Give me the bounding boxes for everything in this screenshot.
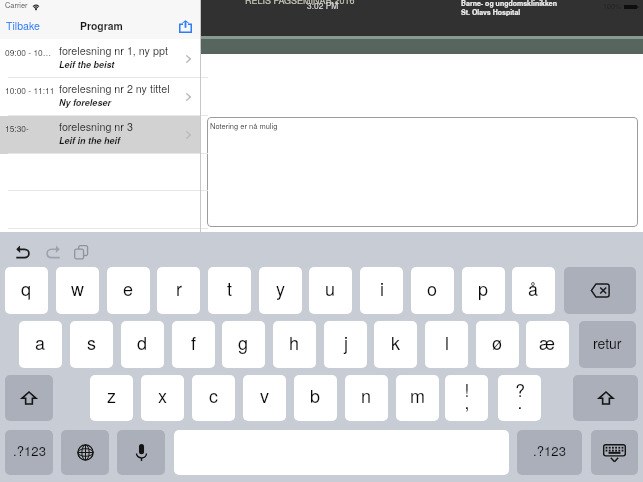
button[interactable]: k bbox=[374, 321, 417, 368]
button[interactable]: q bbox=[5, 267, 48, 314]
staticText: g bbox=[238, 329, 249, 355]
staticText: e bbox=[123, 275, 134, 301]
staticText: f bbox=[191, 329, 197, 355]
staticText: b bbox=[310, 382, 321, 408]
button[interactable]: Paste bbox=[70, 241, 91, 262]
button[interactable]: Next keyboard bbox=[61, 430, 109, 475]
staticText: z bbox=[107, 382, 116, 408]
staticText: r bbox=[176, 275, 182, 301]
button[interactable]: y bbox=[259, 267, 302, 314]
staticText: æ bbox=[539, 329, 556, 355]
staticText: forelesning nr 3 bbox=[59, 119, 133, 134]
button[interactable]: 15:30- bbox=[0, 116, 200, 154]
button[interactable]: å bbox=[512, 267, 555, 314]
staticText: h bbox=[289, 329, 300, 355]
staticText: Tilbake bbox=[6, 18, 40, 33]
staticText: v bbox=[260, 382, 269, 408]
staticText: x bbox=[158, 382, 167, 408]
button[interactable]: t bbox=[208, 267, 251, 314]
staticText: o bbox=[427, 275, 438, 301]
button[interactable]: retur bbox=[579, 321, 636, 368]
staticText: c bbox=[209, 382, 218, 408]
button[interactable]: a bbox=[19, 321, 62, 368]
staticText: m bbox=[410, 382, 425, 408]
button[interactable]: z bbox=[90, 375, 133, 421]
staticText: 3:02 PM bbox=[307, 0, 339, 11]
button[interactable]: m bbox=[396, 375, 439, 421]
staticText: .?123 bbox=[533, 441, 566, 460]
button[interactable]: n bbox=[345, 375, 388, 421]
staticText: Carrier bbox=[5, 0, 28, 11]
button[interactable]: .?123 bbox=[5, 430, 53, 475]
button[interactable]: 09:00 - 10… bbox=[0, 40, 200, 78]
button[interactable]: Tilbake bbox=[2, 16, 44, 37]
button[interactable]: ø bbox=[476, 321, 519, 368]
staticText: Leif the beist bbox=[59, 58, 115, 71]
staticText: s bbox=[87, 329, 96, 355]
staticText: 15:30- bbox=[5, 122, 29, 134]
button[interactable]: w bbox=[56, 267, 99, 314]
button[interactable]: Dictate bbox=[117, 430, 165, 475]
staticText: 10:00 - 11:11 bbox=[5, 84, 55, 96]
button[interactable]: j bbox=[324, 321, 367, 368]
staticText: , bbox=[455, 389, 479, 414]
staticText: i bbox=[380, 275, 384, 301]
button[interactable]: f bbox=[172, 321, 215, 368]
button[interactable]: e bbox=[107, 267, 150, 314]
staticText: d bbox=[137, 329, 148, 355]
staticText: RELIS FAGSEMINAR 2016 bbox=[245, 0, 355, 7]
button[interactable]: Question mark bbox=[498, 375, 541, 421]
button[interactable]: r bbox=[157, 267, 200, 314]
staticText: St. Olavs Hospital bbox=[461, 7, 521, 17]
button[interactable]: Backspace bbox=[564, 267, 636, 314]
staticText: l bbox=[445, 329, 449, 355]
staticText: k bbox=[391, 329, 400, 355]
staticText: q bbox=[21, 275, 32, 301]
staticText: w bbox=[71, 275, 84, 301]
staticText: n bbox=[361, 382, 372, 408]
button[interactable]: 10:00 - 11:11 bbox=[0, 78, 200, 116]
button[interactable]: i bbox=[360, 267, 403, 314]
staticText: t bbox=[227, 275, 233, 301]
button[interactable]: g bbox=[222, 321, 265, 368]
button[interactable]: æ bbox=[526, 321, 569, 368]
staticText: u bbox=[325, 275, 336, 301]
staticText: å bbox=[528, 275, 539, 301]
button[interactable]: b bbox=[294, 375, 337, 421]
button[interactable]: s bbox=[70, 321, 113, 368]
staticText: ! bbox=[455, 377, 479, 402]
staticText: Barne- og ungdomsklinikken bbox=[461, 0, 557, 8]
button[interactable]: v bbox=[243, 375, 286, 421]
button[interactable]: Share bbox=[172, 14, 198, 38]
staticText: j bbox=[344, 329, 348, 355]
staticText: Notering er nå mulig bbox=[210, 120, 278, 131]
button[interactable]: Notering er nå mulig bbox=[207, 117, 638, 227]
staticText: ? bbox=[508, 377, 532, 402]
button[interactable]: h bbox=[273, 321, 316, 368]
button[interactable]: Redo bbox=[42, 241, 63, 262]
button[interactable]: o bbox=[411, 267, 454, 314]
button[interactable]: .?123 bbox=[517, 430, 582, 475]
staticText: y bbox=[276, 275, 285, 301]
button[interactable]: x bbox=[141, 375, 184, 421]
staticText: Leif in the heif bbox=[59, 134, 120, 147]
button[interactable]: Shift bbox=[5, 375, 53, 421]
staticText: 100% bbox=[603, 1, 622, 11]
staticText: .?123 bbox=[13, 441, 46, 460]
staticText: forelesning nr 2 ny tittel bbox=[59, 81, 170, 96]
staticText: . bbox=[508, 389, 532, 414]
button[interactable]: l bbox=[425, 321, 468, 368]
button[interactable]: Exclamation mark bbox=[445, 375, 488, 421]
button[interactable]: Hide keyboard bbox=[591, 430, 638, 475]
staticText: Ny foreleser bbox=[59, 96, 111, 109]
button[interactable]: Shift bbox=[573, 375, 638, 421]
button[interactable]: c bbox=[192, 375, 235, 421]
staticText: p bbox=[478, 275, 489, 301]
button[interactable]: p bbox=[462, 267, 505, 314]
staticText: ø bbox=[492, 329, 503, 355]
button[interactable]: d bbox=[121, 321, 164, 368]
staticText: Program bbox=[80, 18, 123, 33]
button[interactable]: Undo bbox=[12, 241, 33, 262]
button[interactable]: u bbox=[309, 267, 352, 314]
